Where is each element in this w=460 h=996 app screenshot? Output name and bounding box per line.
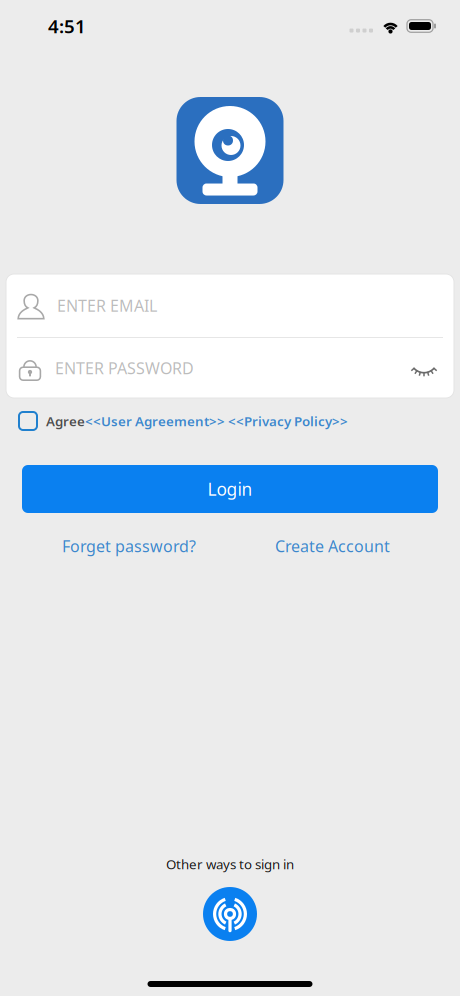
staticText: ENTER PASSWORD [55, 357, 194, 379]
staticText: <<User Agreement>> <<Privacy Policy>> [85, 412, 348, 430]
staticText: ENTER EMAIL [57, 295, 157, 316]
button[interactable]: Login [22, 465, 438, 513]
staticText: Login [207, 477, 252, 500]
button[interactable]: Sign in with device [203, 887, 257, 941]
staticText: Forget password? [62, 535, 196, 557]
button[interactable]: Create Account [275, 531, 390, 561]
button[interactable]: Show password [411, 357, 437, 379]
button[interactable]: Forget password? [62, 531, 196, 561]
staticText: Create Account [275, 535, 390, 557]
staticText: 4:51 [48, 14, 86, 38]
button[interactable]: <<User Agreement>> <<Privacy Policy>> [85, 406, 348, 436]
staticText: Other ways to sign in [166, 855, 294, 873]
staticText: Agree [46, 412, 85, 430]
button[interactable]: Agree [19, 406, 85, 436]
